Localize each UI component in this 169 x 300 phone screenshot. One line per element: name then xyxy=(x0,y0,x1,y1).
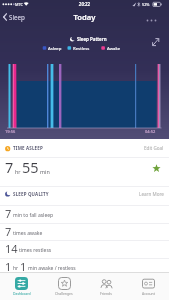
staticText: Challenges xyxy=(55,291,73,296)
staticText: Asleep xyxy=(48,45,62,51)
staticText: Account xyxy=(142,291,155,296)
staticText: 14 xyxy=(5,241,18,256)
staticText: 1 xyxy=(5,259,12,274)
button[interactable]: Friends xyxy=(85,272,127,300)
staticText: Restless xyxy=(73,45,90,51)
button[interactable]: 7 xyxy=(5,157,50,177)
staticText: Dashboard xyxy=(13,291,31,296)
staticText: Today xyxy=(0,12,169,22)
button[interactable]: 7 xyxy=(5,206,54,221)
staticText: Awake xyxy=(107,45,121,51)
button[interactable]: Challenges xyxy=(43,272,85,300)
button[interactable]: 1 xyxy=(5,259,76,274)
staticText: Sleep Pattern xyxy=(77,36,107,42)
staticText: 52% xyxy=(142,2,150,7)
staticText: 55 xyxy=(22,157,39,177)
button[interactable]: Edit Goal xyxy=(0,145,169,151)
staticText: Edit Goal xyxy=(144,145,164,151)
staticText: 7 xyxy=(5,206,12,221)
staticText: times restless xyxy=(19,247,52,254)
staticText: 20:22 xyxy=(0,1,169,7)
staticText: TIME ASLEEP xyxy=(13,145,43,151)
staticText: SLEEP QUALITY xyxy=(13,191,49,197)
button[interactable]: Account xyxy=(127,272,169,300)
button[interactable]: Dashboard xyxy=(0,272,43,300)
staticText: Friends xyxy=(100,291,112,296)
staticText: min xyxy=(40,168,50,175)
staticText: 1 xyxy=(20,259,27,274)
button[interactable]: Learn More xyxy=(0,191,169,197)
staticText: times awake xyxy=(13,230,43,237)
button[interactable]: 7 xyxy=(5,224,43,239)
staticText: 7 xyxy=(5,224,12,239)
staticText: MTC xyxy=(15,2,23,7)
staticText: Learn More xyxy=(139,191,164,197)
staticText: 04:52 xyxy=(145,129,156,134)
staticText: 19:56 xyxy=(5,129,16,134)
button[interactable]: Sleep xyxy=(9,13,25,21)
staticText: min to fall asleep xyxy=(13,212,54,219)
staticText: hr xyxy=(15,168,21,175)
button[interactable] xyxy=(152,164,161,173)
staticText: hr xyxy=(13,265,19,272)
staticText: min awake / restless xyxy=(28,265,76,272)
button[interactable]: 14 xyxy=(5,241,52,256)
staticText: 7 xyxy=(5,157,14,177)
